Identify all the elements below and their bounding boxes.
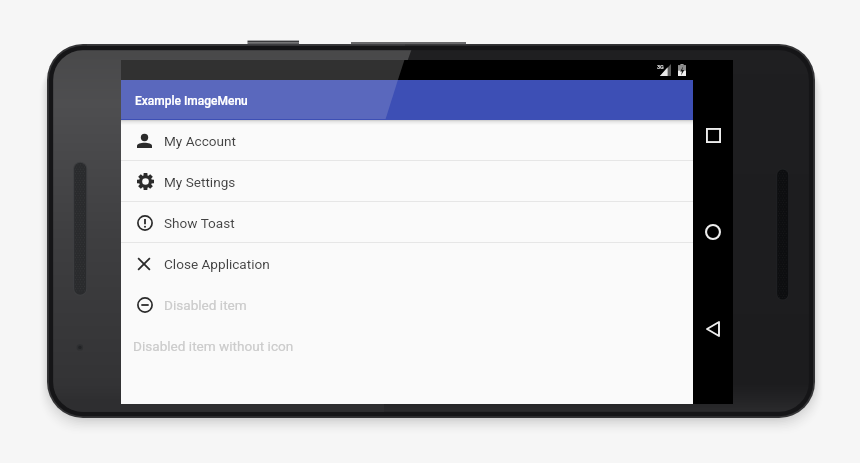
- button[interactable]: Disabled item: [121, 284, 693, 325]
- button[interactable]: Close Application: [121, 243, 693, 284]
- staticText: 3G: [657, 64, 664, 70]
- button[interactable]: Recents: [693, 124, 733, 146]
- staticText: Disabled item without icon: [133, 338, 294, 354]
- button[interactable]: Disabled item without icon: [121, 325, 693, 366]
- button[interactable]: My Account: [121, 120, 693, 161]
- staticText: My Account: [164, 133, 236, 149]
- button[interactable]: My Settings: [121, 161, 693, 202]
- staticText: Close Application: [164, 256, 270, 272]
- staticText: My Settings: [164, 174, 236, 190]
- staticText: Show Toast: [164, 215, 235, 231]
- button[interactable]: Home: [693, 221, 733, 243]
- button[interactable]: Show Toast: [121, 202, 693, 243]
- staticText: Example ImageMenu: [135, 94, 248, 108]
- staticText: Disabled item: [164, 297, 247, 313]
- button[interactable]: Back: [693, 318, 733, 340]
